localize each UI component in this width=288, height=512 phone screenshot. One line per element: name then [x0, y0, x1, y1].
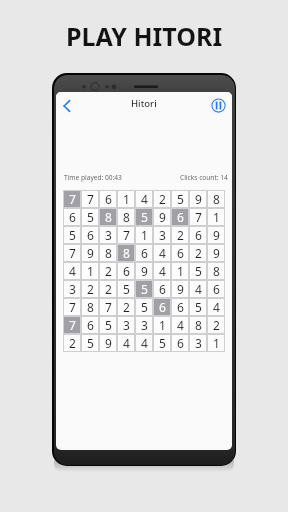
button[interactable]: 1: [118, 191, 134, 207]
button[interactable]: 4: [136, 335, 152, 351]
button[interactable]: 7: [118, 227, 134, 243]
button[interactable]: 4: [190, 281, 206, 297]
staticText: 6: [195, 227, 202, 243]
button[interactable]: 3: [100, 227, 116, 243]
button[interactable]: 7: [64, 299, 80, 315]
button[interactable]: 2: [100, 281, 116, 297]
button[interactable]: 3: [190, 335, 206, 351]
staticText: 7: [123, 227, 130, 243]
button[interactable]: Pause: [209, 96, 227, 114]
button[interactable]: 4: [172, 317, 188, 333]
button[interactable]: 1: [172, 263, 188, 279]
button[interactable]: 5: [100, 317, 116, 333]
button[interactable]: 5: [82, 335, 98, 351]
staticText: 7: [69, 191, 76, 207]
button[interactable]: 8: [100, 245, 116, 261]
button[interactable]: 8: [82, 299, 98, 315]
button[interactable]: 9: [100, 335, 116, 351]
button[interactable]: 9: [82, 245, 98, 261]
button[interactable]: 2: [64, 335, 80, 351]
button[interactable]: 6: [172, 335, 188, 351]
button[interactable]: 5: [136, 299, 152, 315]
button[interactable]: 2: [208, 317, 224, 333]
button[interactable]: 9: [136, 263, 152, 279]
button[interactable]: 1: [208, 335, 224, 351]
button[interactable]: 9: [190, 191, 206, 207]
staticText: 5: [87, 335, 94, 351]
button[interactable]: 9: [172, 281, 188, 297]
staticText: 8: [105, 209, 112, 225]
staticText: 2: [105, 263, 112, 279]
button[interactable]: Back: [58, 97, 75, 114]
button[interactable]: 5: [136, 281, 152, 297]
button[interactable]: 7: [64, 317, 80, 333]
button[interactable]: 1: [154, 317, 170, 333]
button[interactable]: 8: [190, 317, 206, 333]
button[interactable]: 7: [82, 191, 98, 207]
button[interactable]: 5: [190, 299, 206, 315]
button[interactable]: 5: [190, 263, 206, 279]
button[interactable]: 1: [82, 263, 98, 279]
button[interactable]: 8: [208, 263, 224, 279]
button[interactable]: 6: [154, 299, 170, 315]
button[interactable]: 3: [64, 281, 80, 297]
button[interactable]: 4: [154, 245, 170, 261]
button[interactable]: 4: [154, 263, 170, 279]
button[interactable]: 6: [154, 281, 170, 297]
button[interactable]: 6: [118, 263, 134, 279]
button[interactable]: 6: [190, 227, 206, 243]
button[interactable]: 6: [82, 317, 98, 333]
staticText: 6: [213, 281, 220, 297]
button[interactable]: 6: [208, 281, 224, 297]
staticText: 5: [105, 317, 112, 333]
staticText: 4: [141, 335, 148, 351]
button[interactable]: 1: [208, 209, 224, 225]
button[interactable]: 4: [64, 263, 80, 279]
button[interactable]: 3: [136, 317, 152, 333]
button[interactable]: 5: [154, 335, 170, 351]
button[interactable]: 3: [118, 317, 134, 333]
staticText: 1: [159, 317, 166, 333]
button[interactable]: 4: [118, 335, 134, 351]
button[interactable]: 9: [208, 227, 224, 243]
button[interactable]: 5: [136, 209, 152, 225]
staticText: 2: [213, 317, 220, 333]
staticText: 6: [87, 227, 94, 243]
button[interactable]: 4: [136, 191, 152, 207]
button[interactable]: 6: [82, 227, 98, 243]
button[interactable]: 7: [190, 209, 206, 225]
button[interactable]: 6: [172, 299, 188, 315]
button[interactable]: 2: [190, 245, 206, 261]
staticText: 5: [159, 335, 166, 351]
button[interactable]: 2: [82, 281, 98, 297]
button[interactable]: 8: [118, 245, 134, 261]
staticText: 6: [177, 245, 184, 261]
button[interactable]: 3: [154, 227, 170, 243]
button[interactable]: 5: [64, 227, 80, 243]
staticText: Clicks count: 14: [180, 173, 228, 182]
staticText: 6: [177, 209, 184, 225]
button[interactable]: 7: [100, 299, 116, 315]
button[interactable]: 6: [172, 209, 188, 225]
button[interactable]: 9: [208, 245, 224, 261]
button[interactable]: 7: [64, 245, 80, 261]
button[interactable]: 6: [100, 191, 116, 207]
button[interactable]: 2: [118, 299, 134, 315]
button[interactable]: 7: [64, 191, 80, 207]
button[interactable]: 6: [172, 245, 188, 261]
button[interactable]: 6: [136, 245, 152, 261]
button[interactable]: 1: [136, 227, 152, 243]
button[interactable]: 9: [154, 209, 170, 225]
button[interactable]: 5: [82, 209, 98, 225]
button[interactable]: 2: [172, 227, 188, 243]
button[interactable]: 4: [208, 299, 224, 315]
button[interactable]: 8: [208, 191, 224, 207]
staticText: 5: [195, 263, 202, 279]
button[interactable]: 5: [172, 191, 188, 207]
button[interactable]: 8: [118, 209, 134, 225]
button[interactable]: 5: [118, 281, 134, 297]
button[interactable]: 6: [64, 209, 80, 225]
button[interactable]: 2: [154, 191, 170, 207]
button[interactable]: 8: [100, 209, 116, 225]
button[interactable]: 2: [100, 263, 116, 279]
